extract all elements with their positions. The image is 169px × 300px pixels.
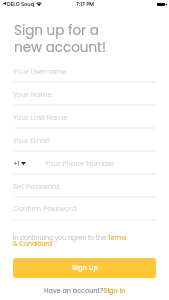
button[interactable]: Your Email xyxy=(0,129,169,151)
staticText: Confirm Password xyxy=(13,204,77,214)
staticText: Set Password xyxy=(13,182,60,192)
staticText: Sign up for a new account! xyxy=(14,21,107,57)
staticText: Have an account?Sign In xyxy=(44,286,126,295)
staticText: Sign Up xyxy=(72,263,98,273)
other: Select country code xyxy=(21,162,26,165)
staticText: Your Username xyxy=(13,67,67,77)
button[interactable]: Your Name xyxy=(0,83,169,105)
button[interactable]: Your Last Name xyxy=(0,106,169,128)
button[interactable]: Set Password xyxy=(0,175,169,197)
button[interactable]: +1 xyxy=(0,152,169,174)
other: Back xyxy=(3,2,6,5)
staticText: Your Last Name xyxy=(13,113,68,123)
button[interactable]: Your Username xyxy=(0,60,169,82)
staticText: In continuing you agree to the Terms & C… xyxy=(13,233,129,248)
other: Wi-Fi xyxy=(36,2,42,6)
staticText: 7:17 PM xyxy=(76,1,94,8)
button[interactable]: Sign Up xyxy=(13,258,156,278)
staticText: DELO Souq xyxy=(7,1,35,8)
other: Battery full xyxy=(157,3,167,6)
button[interactable]: Confirm Password xyxy=(0,197,169,219)
staticText: Your Name xyxy=(13,90,52,100)
staticText: +1 xyxy=(13,159,20,168)
button[interactable]: Have an account?Sign In xyxy=(0,286,169,298)
staticText: Your Email xyxy=(13,136,50,146)
staticText: Your Phone Number xyxy=(45,159,115,169)
